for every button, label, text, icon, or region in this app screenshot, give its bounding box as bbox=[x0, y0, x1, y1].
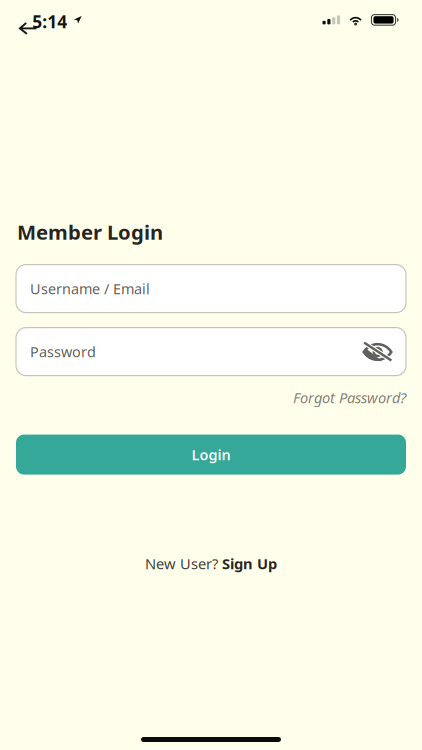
staticText: New User? bbox=[145, 554, 222, 574]
button[interactable]: Forgot Password? bbox=[293, 388, 406, 408]
staticText: Login bbox=[191, 445, 230, 464]
staticText: Forgot Password? bbox=[293, 388, 406, 408]
staticText: 5:14 bbox=[32, 10, 67, 33]
button[interactable]: New User? bbox=[145, 554, 277, 574]
button[interactable]: Show password bbox=[362, 342, 393, 362]
staticText: Password bbox=[30, 342, 96, 361]
button[interactable]: Login bbox=[16, 435, 406, 475]
staticText: Sign Up bbox=[222, 554, 277, 574]
staticText: Username / Email bbox=[30, 279, 150, 298]
staticText: Member Login bbox=[17, 218, 163, 246]
